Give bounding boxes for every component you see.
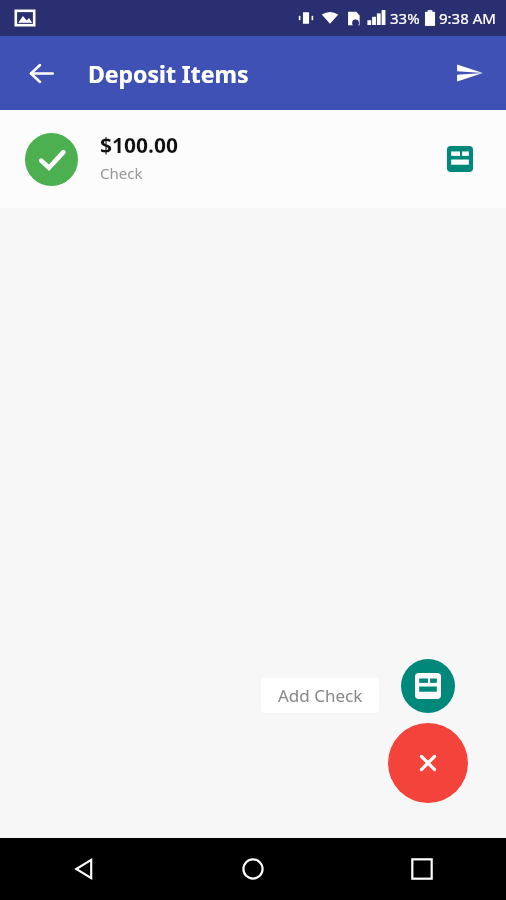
button[interactable]: Send	[446, 49, 494, 97]
button[interactable]: Back	[0, 838, 168, 900]
button[interactable]: Home	[168, 838, 337, 900]
staticText: 33%	[390, 8, 420, 28]
button[interactable]: Recents	[337, 838, 506, 900]
button[interactable]: Back	[17, 49, 65, 97]
staticText: Add Check	[278, 684, 363, 707]
staticText: Deposit Items	[88, 58, 249, 89]
button[interactable]: Check image	[440, 139, 480, 179]
button[interactable]: Add Check	[401, 659, 455, 713]
button[interactable]: Close	[388, 723, 468, 803]
button[interactable]: Add Check	[261, 678, 379, 713]
staticText: Check	[100, 163, 143, 183]
staticText: 9:38 AM	[439, 8, 496, 28]
button[interactable]: $100.00	[0, 110, 506, 208]
staticText: $100.00	[100, 131, 178, 160]
